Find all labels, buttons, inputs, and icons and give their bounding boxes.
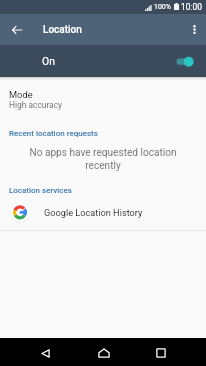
staticText: High accuracy [9, 100, 63, 110]
staticText: Location services [9, 186, 72, 195]
button[interactable]: Recent apps [143, 338, 178, 366]
button[interactable]: Navigate up [2, 14, 31, 45]
staticText: 100% [154, 3, 171, 11]
staticText: Mode [9, 89, 33, 100]
button[interactable]: Home [86, 338, 121, 366]
button[interactable]: Google Location History [0, 197, 206, 230]
button[interactable]: On [0, 45, 206, 77]
staticText: No apps have requested location recently [20, 147, 186, 172]
staticText: On [42, 55, 55, 67]
staticText: Location [43, 24, 82, 36]
button[interactable]: Mode [0, 85, 206, 114]
button[interactable]: More options [182, 14, 206, 45]
staticText: 10:00 [181, 2, 202, 12]
button[interactable]: Back [28, 338, 63, 366]
staticText: Google Location History [44, 207, 143, 218]
staticText: Recent location requests [9, 129, 98, 138]
